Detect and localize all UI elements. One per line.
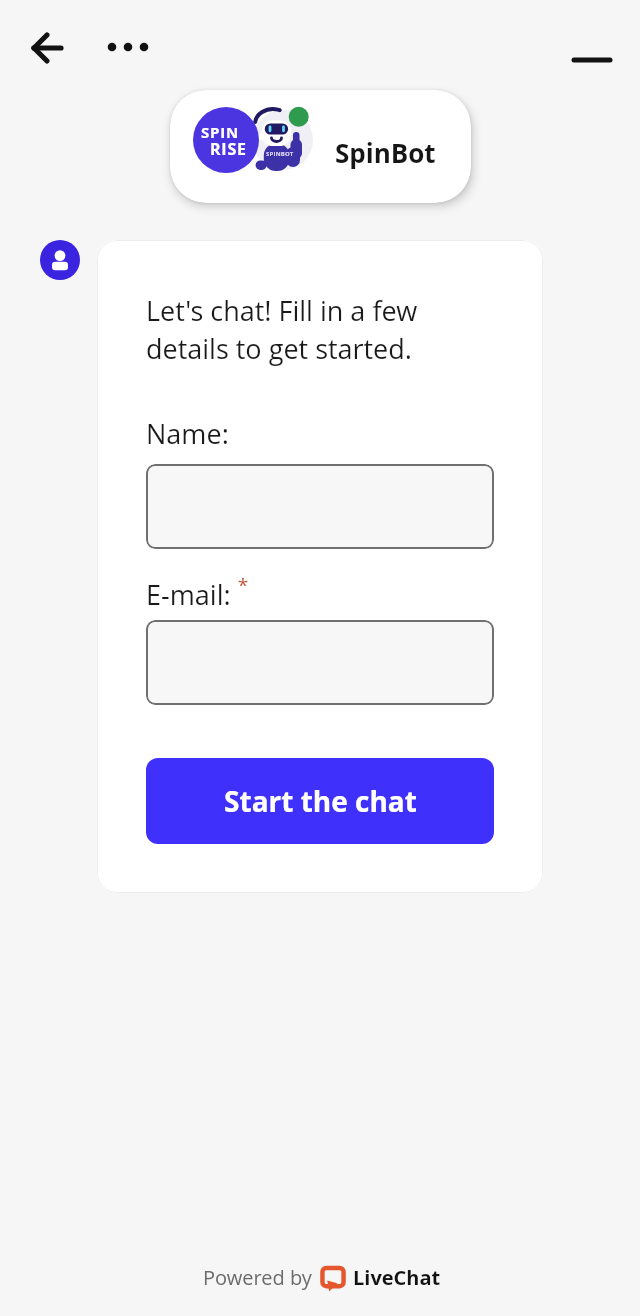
staticText: Start the chat xyxy=(224,782,417,820)
staticText: E-mail: * xyxy=(146,572,249,613)
button[interactable] xyxy=(146,620,494,705)
button[interactable]: Start the chat xyxy=(146,758,494,844)
staticText: RISE xyxy=(210,138,247,160)
staticText: SpinBot xyxy=(335,135,436,170)
staticText: LiveChat xyxy=(353,1264,441,1291)
staticText: Let's chat! Fill in a few details to get… xyxy=(146,292,446,367)
staticText: SPIN xyxy=(201,122,240,142)
staticText: Name: xyxy=(146,415,229,452)
button[interactable] xyxy=(146,464,494,549)
button[interactable]: Powered by xyxy=(203,1264,441,1291)
button[interactable]: Back xyxy=(23,23,71,71)
staticText: SPINBOT xyxy=(266,150,294,158)
button[interactable]: More options xyxy=(104,23,152,71)
staticText: Powered by xyxy=(203,1264,312,1291)
button[interactable]: Minimize xyxy=(568,36,616,84)
button[interactable]: SPINBOT xyxy=(170,90,471,203)
